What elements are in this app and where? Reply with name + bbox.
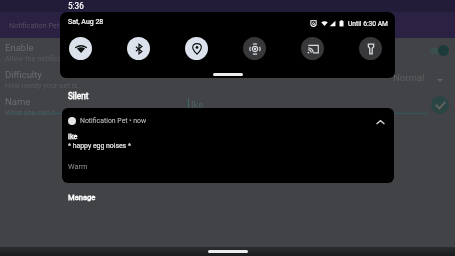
staticText: Difficulty [5,69,42,80]
staticText: * happy egg noises * [68,142,131,150]
staticText: 5:36 [68,1,84,11]
staticText: Enable [5,42,34,53]
button[interactable]: Flashlight [359,37,382,60]
button[interactable]: Expand difficulty [436,76,444,84]
button[interactable]: Warm [68,162,88,171]
button[interactable]: Screen cast [301,37,324,60]
button[interactable]: Do not disturb [243,37,266,60]
staticText: Name [5,96,31,107]
staticText: Sat, Aug 28 [68,18,104,26]
button[interactable]: Collapse notification [370,112,390,132]
button[interactable]: Manage [68,193,96,202]
button[interactable]: Normal [393,72,425,83]
staticText: Until 6:30 AM [348,20,388,28]
button[interactable]: Name [5,96,455,117]
staticText: Allow the notification pet. [5,54,89,63]
staticText: Ike [191,99,204,110]
button[interactable]: Save [431,96,449,114]
button[interactable]: Enable [430,44,450,57]
button[interactable]: Wi-Fi [69,37,92,60]
staticText: Silent [68,91,89,101]
button[interactable]: Notification Pet • now [62,108,394,183]
button[interactable]: Bluetooth [127,37,150,60]
staticText: What you call it. [5,108,57,117]
button[interactable]: Location [185,37,208,60]
button[interactable]: Difficulty [5,69,455,90]
staticText: How needy your pet is. [5,81,80,90]
staticText: Notification Pet • now [80,117,147,125]
staticText: Notification Pet [9,21,60,30]
button[interactable]: Enable [5,42,455,63]
staticText: Ike [68,132,78,140]
